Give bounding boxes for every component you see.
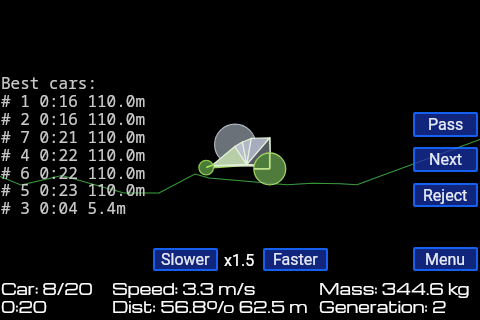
button[interactable]: Slower	[153, 248, 218, 271]
staticText: Slower	[161, 250, 210, 269]
button[interactable]: Reject	[413, 183, 478, 207]
staticText: # 7 0:21 110.0m	[1, 126, 146, 148]
staticText: Reject	[423, 186, 468, 205]
staticText: # 4 0:22 110.0m	[1, 144, 146, 166]
staticText: # 1 0:16 110.0m	[1, 90, 146, 112]
staticText: Best cars:	[1, 72, 98, 94]
staticText: Menu	[425, 250, 466, 269]
staticText: Car: 8/20	[1, 278, 93, 299]
button[interactable]: Next	[413, 147, 478, 172]
button[interactable]: Pass	[413, 112, 478, 137]
staticText: # 6 0:22 110.0m	[1, 162, 146, 184]
button[interactable]: Faster	[263, 248, 328, 271]
staticText: # 5 0:23 110.0m	[1, 179, 146, 201]
staticText: 0:20	[1, 296, 48, 317]
staticText: Next	[429, 150, 463, 169]
staticText: Pass	[428, 115, 464, 134]
staticText: Generation: 2	[319, 296, 447, 317]
staticText: # 2 0:16 110.0m	[1, 108, 146, 130]
staticText: x1.5	[224, 251, 255, 270]
staticText: # 3 0:04 5.4m	[1, 197, 126, 219]
button[interactable]: Menu	[413, 247, 478, 271]
staticText: Speed: 3.3 m/s	[112, 278, 256, 299]
staticText: Dist: 56.8% 62.5 m	[112, 296, 308, 317]
staticText: Faster	[273, 250, 318, 269]
staticText: Mass: 344.6 kg	[319, 278, 470, 299]
